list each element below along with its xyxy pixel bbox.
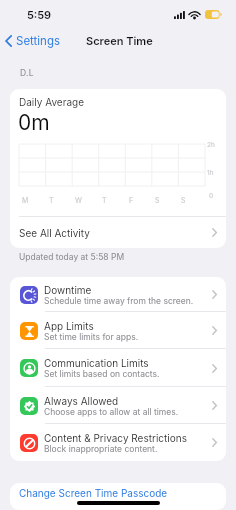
staticText: Communication Limits [44, 357, 149, 369]
staticText: Choose apps to allow at all times. [44, 407, 179, 417]
staticText: Settings [16, 34, 61, 48]
staticText: Content & Privacy Restrictions [44, 432, 187, 444]
staticText: S [155, 196, 160, 204]
button[interactable]: Downtime [10, 277, 226, 312]
staticText: Set time limits for apps. [44, 332, 139, 342]
staticText: Updated today at 5:58 PM [19, 252, 125, 262]
staticText: Block inappropriate content. [44, 444, 158, 454]
staticText: Set limits based on contacts. [44, 369, 160, 379]
staticText: M [22, 196, 29, 204]
button[interactable]: App Limits [10, 312, 226, 349]
staticText: 2h [207, 141, 215, 149]
staticText: Downtime [44, 284, 92, 296]
staticText: T [49, 196, 54, 204]
button[interactable]: Change Screen Time Passcode [10, 483, 226, 510]
staticText: 5:59 [27, 8, 51, 21]
button[interactable]: Always Allowed [10, 387, 226, 424]
button[interactable]: Communication Limits [10, 349, 226, 387]
staticText: Screen Time [86, 34, 153, 47]
staticText: Change Screen Time Passcode [19, 487, 168, 499]
button[interactable]: Content & Privacy Restrictions [10, 424, 226, 461]
staticText: Always Allowed [44, 395, 119, 407]
button[interactable]: Settings [5, 32, 61, 49]
staticText: S [181, 196, 186, 204]
staticText: F [129, 196, 134, 204]
staticText: Daily Average [19, 96, 84, 108]
staticText: 0m [18, 110, 50, 135]
staticText: App Limits [44, 320, 94, 332]
staticText: D.L [20, 68, 34, 78]
button[interactable]: See All Activity [10, 217, 226, 248]
staticText: 1h [207, 169, 214, 177]
staticText: T [102, 196, 107, 204]
staticText: See All Activity [19, 227, 90, 239]
staticText: W [75, 196, 82, 204]
staticText: 0 [209, 192, 214, 200]
staticText: Schedule time away from the screen. [44, 296, 194, 306]
